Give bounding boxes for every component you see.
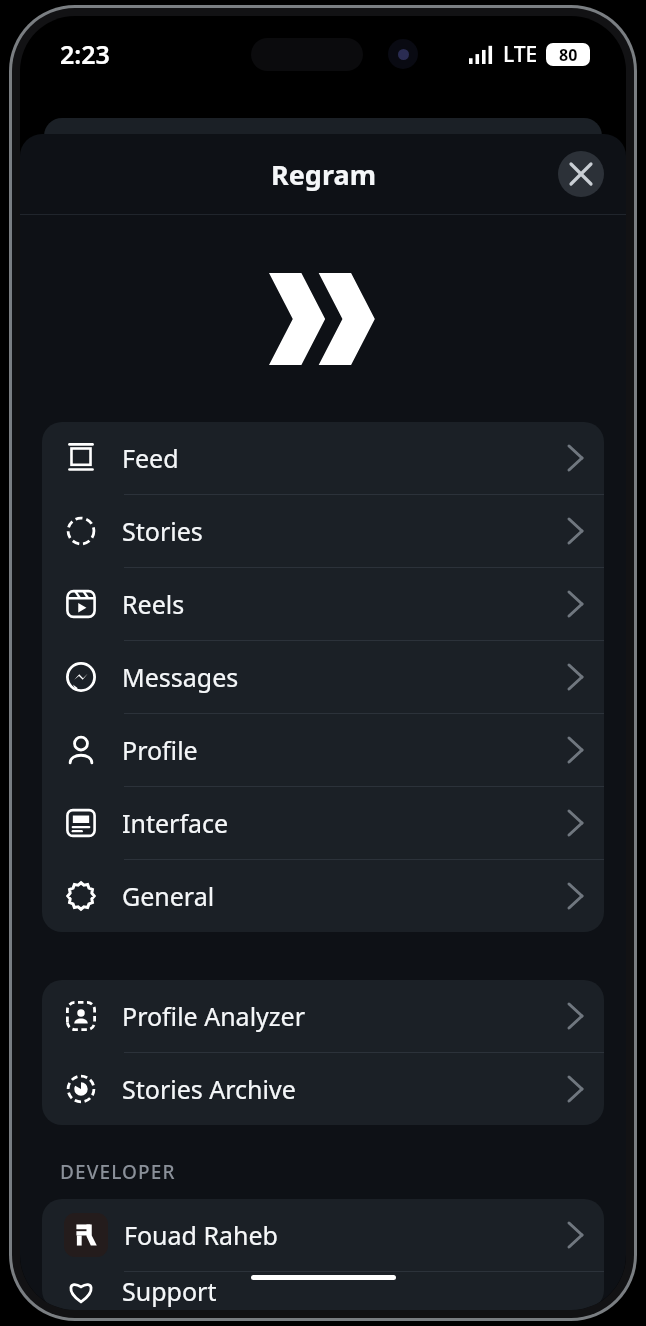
- staticText: 80: [559, 44, 578, 66]
- staticText: DEVELOPER: [60, 1159, 176, 1185]
- button[interactable]: Messages: [42, 641, 604, 713]
- staticText: Profile Analyzer: [122, 999, 306, 1033]
- button[interactable]: Profile Analyzer: [42, 980, 604, 1052]
- button[interactable]: Close: [558, 151, 604, 197]
- staticText: Messages: [122, 660, 239, 694]
- staticText: Stories: [122, 514, 203, 548]
- staticText: General: [122, 879, 215, 913]
- button[interactable]: Profile: [42, 714, 604, 786]
- button[interactable]: Stories: [42, 495, 604, 567]
- staticText: Stories Archive: [122, 1072, 296, 1106]
- button[interactable]: Reels: [42, 568, 604, 640]
- staticText: Profile: [122, 733, 198, 767]
- staticText: Fouad Raheb: [124, 1218, 278, 1252]
- staticText: Feed: [122, 441, 179, 475]
- staticText: Reels: [122, 587, 185, 621]
- button[interactable]: General: [42, 860, 604, 932]
- staticText: Support: [122, 1274, 217, 1308]
- button[interactable]: Stories Archive: [42, 1053, 604, 1125]
- staticText: LTE: [503, 40, 538, 69]
- button[interactable]: Feed: [42, 422, 604, 494]
- staticText: Interface: [122, 806, 229, 840]
- button[interactable]: Fouad Raheb: [42, 1199, 604, 1271]
- staticText: 2:23: [60, 37, 110, 71]
- staticText: Regram: [271, 156, 376, 193]
- button[interactable]: Interface: [42, 787, 604, 859]
- button[interactable]: Support: [42, 1272, 604, 1310]
